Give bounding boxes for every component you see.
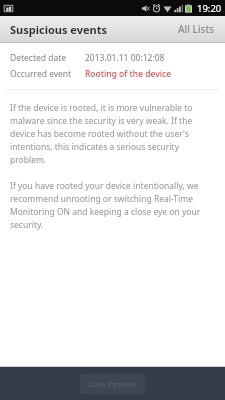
staticText: Scan Options — [88, 379, 137, 389]
button[interactable]: Scan Options — [80, 374, 145, 394]
staticText: All Lists — [178, 22, 215, 36]
staticText: Detected date — [10, 52, 67, 64]
staticText: 2013.01.11 00:12:08 — [85, 52, 165, 64]
staticText: If the device is rooted, it is more vuln… — [10, 102, 215, 166]
staticText: 19:20 — [197, 2, 222, 15]
staticText: Occurred event — [10, 68, 72, 80]
staticText: If you have rooted your device intention… — [10, 180, 215, 231]
button[interactable]: All Lists — [168, 18, 225, 40]
staticText: Suspicious events — [10, 22, 107, 37]
staticText: Rooting of the device — [85, 68, 172, 80]
